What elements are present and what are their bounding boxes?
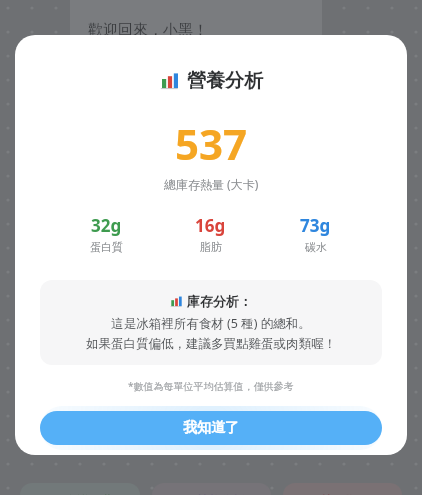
staticText: 537	[175, 115, 248, 172]
staticText: 73g	[300, 214, 331, 237]
staticText: 如果蛋白質偏低，建議多買點雞蛋或肉類喔！	[86, 336, 336, 352]
staticText: 16g	[195, 214, 226, 237]
staticText: 蛋白質	[90, 240, 123, 254]
staticText: 歡迎回來，小黑！	[88, 21, 208, 40]
staticText: 這是冰箱裡所有食材 (5 種) 的總和。	[111, 315, 311, 332]
staticText: 32g	[91, 214, 122, 237]
button[interactable]: 我知道了	[40, 411, 382, 445]
staticText: 食譜推薦	[65, 493, 113, 495]
staticText: 總庫存熱量 (大卡)	[164, 176, 259, 192]
staticText: 營養分析	[187, 69, 263, 93]
staticText: 碳水	[305, 240, 327, 254]
staticText: 庫存分析：	[187, 293, 252, 309]
staticText: *數值為每單位平均估算值，僅供參考	[128, 379, 294, 393]
staticText: 脂肪	[200, 240, 222, 254]
staticText: 我知道了	[183, 419, 239, 437]
